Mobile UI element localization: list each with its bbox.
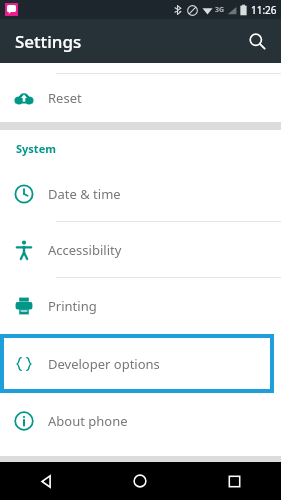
staticText: Developer options	[48, 355, 160, 373]
staticText: Date & time	[48, 185, 121, 203]
button[interactable]: Date & time	[0, 166, 281, 222]
staticText: System	[16, 141, 56, 156]
staticText: Settings	[15, 30, 82, 53]
button[interactable]: Developer options	[0, 334, 281, 393]
button[interactable]: Back	[0, 462, 93, 500]
staticText: Printing	[48, 297, 97, 315]
staticText: Reset	[48, 89, 82, 107]
staticText: Accessibility	[48, 241, 122, 259]
button[interactable]: Recent apps	[187, 462, 281, 500]
button[interactable]: About phone	[0, 393, 281, 449]
button[interactable]: Reset	[0, 74, 281, 122]
button[interactable]: Printing	[0, 278, 281, 334]
button[interactable]: Accessibility	[0, 222, 281, 278]
staticText: 11:26	[251, 3, 277, 17]
staticText: About phone	[48, 412, 128, 430]
staticText: 3G	[215, 5, 225, 15]
button[interactable]: Search	[241, 25, 273, 57]
button[interactable]: Home	[93, 462, 187, 500]
